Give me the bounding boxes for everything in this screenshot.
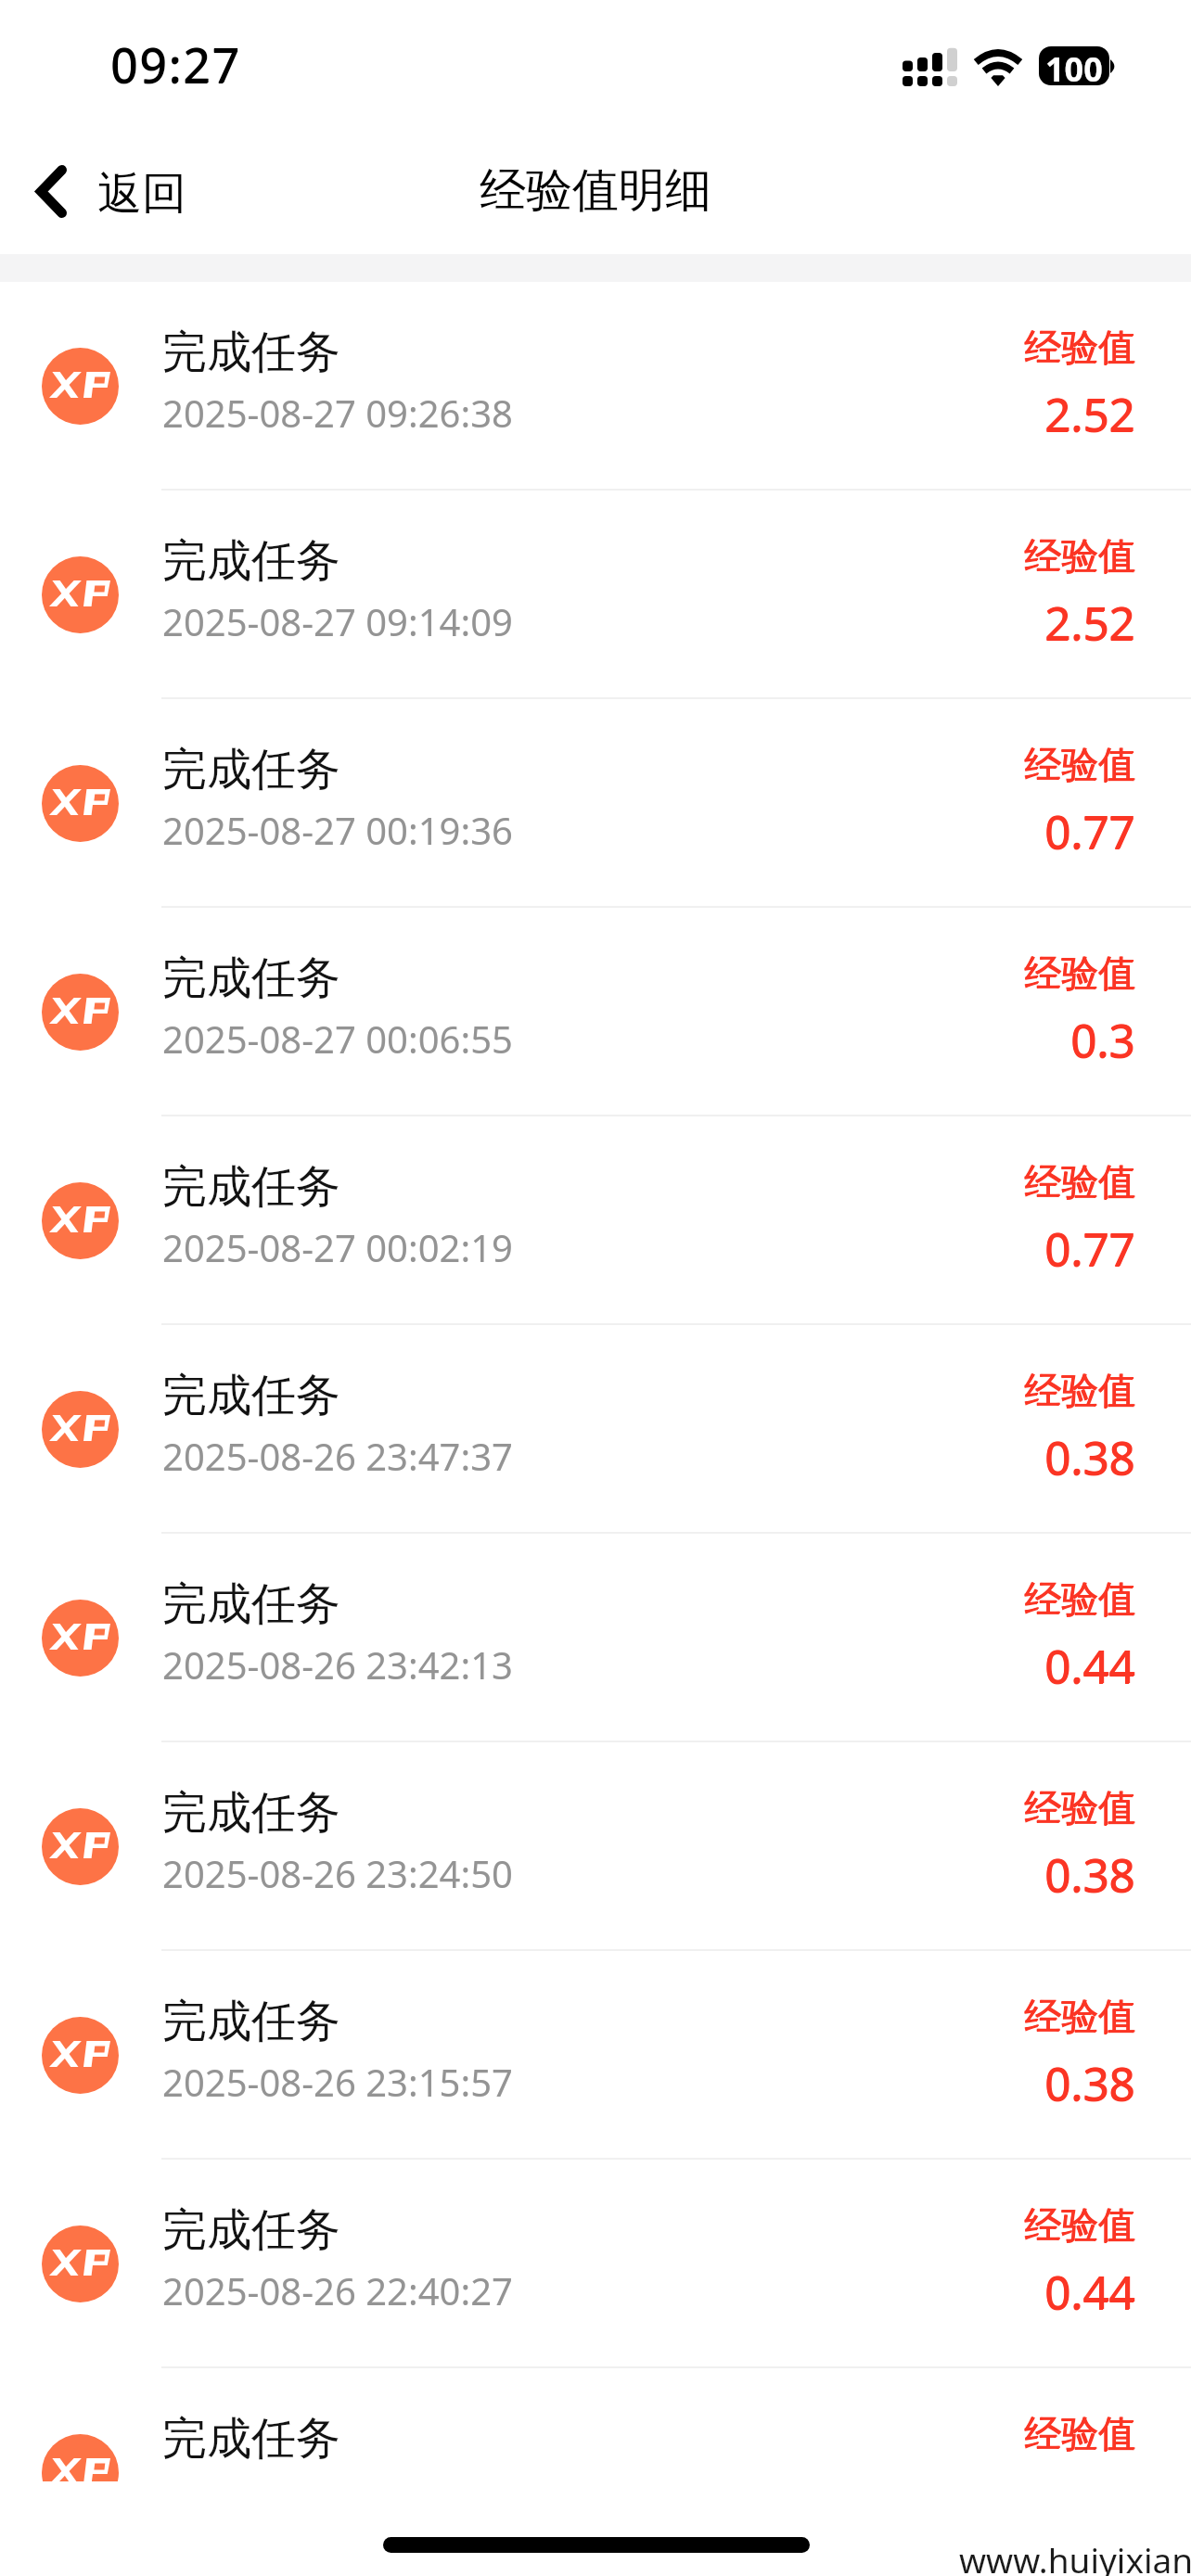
staticText: 完成任务 xyxy=(162,2202,340,2258)
staticText: 经验值 xyxy=(1024,1575,1135,1622)
staticText: 0.3 xyxy=(1070,1010,1135,1072)
staticText: 完成任务 xyxy=(162,533,340,589)
staticText: 2025-08-26 23:42:13 xyxy=(162,1639,513,1690)
staticText: 0.77 xyxy=(1044,1218,1135,1281)
staticText: 经验值 xyxy=(1024,533,1135,580)
staticText: 0.77 xyxy=(1044,800,1135,862)
staticText: 2.52 xyxy=(1044,384,1135,446)
button[interactable]: 完成任务 xyxy=(0,1951,1191,2160)
button[interactable]: 完成任务 xyxy=(0,2160,1191,2368)
staticText: 0.44 xyxy=(1045,1635,1136,1697)
staticText: 0.38 xyxy=(1045,2052,1136,2114)
staticText: 2025-08-27 09:26:38 xyxy=(162,388,513,438)
button[interactable]: 完成任务 xyxy=(0,1325,1191,1534)
staticText: 0.38 xyxy=(1044,1844,1135,1906)
staticText: 经验值 xyxy=(1025,1784,1136,1830)
staticText: 0.44 xyxy=(1044,1635,1135,1697)
staticText: 0.3 xyxy=(1071,1009,1136,1071)
staticText: 完成任务 xyxy=(162,1576,340,1632)
staticText: 2.52 xyxy=(1044,593,1135,655)
staticText: 0.38 xyxy=(1044,2052,1135,2114)
staticText: 经验值 xyxy=(1025,1993,1136,2039)
staticText: 经验值明细 xyxy=(480,161,711,220)
staticText: 2025-08-27 00:02:19 xyxy=(162,1222,513,1272)
button[interactable]: 完成任务 xyxy=(0,282,1191,491)
staticText: 0.38 xyxy=(1044,1426,1135,1488)
button[interactable]: 完成任务 xyxy=(0,908,1191,1116)
staticText: 经验值 xyxy=(1024,325,1135,371)
staticText: 0.44 xyxy=(1044,1636,1135,1698)
staticText: 2025-08-26 23:15:57 xyxy=(162,2057,513,2107)
staticText: 经验值 xyxy=(1024,1159,1135,1205)
staticText: 经验值 xyxy=(1025,324,1136,370)
staticText: 完成任务 xyxy=(162,742,340,797)
staticText: 经验值 xyxy=(1024,1158,1135,1205)
staticText: 0.77 xyxy=(1045,1218,1136,1280)
staticText: 返回 xyxy=(97,166,186,222)
staticText: 完成任务 xyxy=(162,950,340,1006)
staticText: 100 xyxy=(1045,46,1103,85)
staticText: 09:27 xyxy=(110,32,241,96)
staticText: 2025-08-27 09:14:09 xyxy=(162,596,513,646)
button[interactable]: 完成任务 xyxy=(0,1534,1191,1742)
staticText: 0.38 xyxy=(1044,2053,1135,2115)
staticText: 经验值 xyxy=(1024,1576,1135,1623)
staticText: 经验值 xyxy=(1024,742,1135,788)
button[interactable]: 完成任务 xyxy=(0,2368,1191,2481)
staticText: 完成任务 xyxy=(162,1785,340,1841)
staticText: 2.52 xyxy=(1044,592,1135,654)
staticText: 09:27 xyxy=(110,32,241,96)
staticText: 经验值 xyxy=(1025,1158,1136,1205)
staticText: 2025-08-26 22:40:27 xyxy=(162,2265,513,2315)
staticText: 经验值 xyxy=(1024,1994,1135,2040)
button[interactable]: 完成任务 xyxy=(0,699,1191,908)
staticText: 2025-08-26 23:47:37 xyxy=(162,1431,513,1481)
staticText: 经验值 xyxy=(1024,1785,1135,1831)
staticText: 0.77 xyxy=(1044,801,1135,863)
other: Battery 100 percent xyxy=(1039,46,1117,87)
staticText: 经验值 xyxy=(1024,950,1135,996)
staticText: 经验值 xyxy=(1024,2411,1135,2457)
button[interactable]: 完成任务 xyxy=(0,491,1191,699)
staticText: 经验值 xyxy=(1024,2202,1135,2249)
staticText: 经验值 xyxy=(1024,324,1135,370)
staticText: 经验值 xyxy=(1025,2201,1136,2248)
staticText: 经验值 xyxy=(1024,950,1135,997)
staticText: 经验值 xyxy=(1024,741,1135,787)
staticText: 完成任务 xyxy=(162,2411,340,2467)
staticText: 经验值 xyxy=(1024,1368,1135,1414)
staticText: 完成任务 xyxy=(162,1994,340,2049)
staticText: 经验值 xyxy=(1024,2201,1135,2248)
staticText: 经验值 xyxy=(1024,1993,1135,2039)
staticText: 经验值 xyxy=(1024,532,1135,579)
button[interactable]: 完成任务 xyxy=(0,1116,1191,1325)
staticText: 0.44 xyxy=(1045,2261,1136,2323)
staticText: 2.52 xyxy=(1045,383,1136,445)
staticText: 经验值 xyxy=(1025,1367,1136,1413)
staticText: 经验值 xyxy=(1024,2410,1135,2456)
staticText: 经验值 xyxy=(1025,1575,1136,1622)
staticText: 2025-08-26 23:24:50 xyxy=(162,1848,513,1898)
staticText: 完成任务 xyxy=(162,1159,340,1215)
staticText: 经验值 xyxy=(1025,741,1136,787)
staticText: 0.38 xyxy=(1045,1843,1136,1906)
staticText: 09:27 xyxy=(111,32,242,96)
staticText: 0.44 xyxy=(1044,2261,1135,2323)
staticText: 2025-08-27 00:19:36 xyxy=(162,805,513,855)
staticText: 完成任务 xyxy=(162,325,340,380)
staticText: 0.77 xyxy=(1044,1218,1135,1280)
staticText: 经验值 xyxy=(1024,1784,1135,1830)
staticText: 经验值 xyxy=(1024,1367,1135,1413)
button[interactable]: 返回 xyxy=(0,111,212,254)
staticText: 0.38 xyxy=(1044,1427,1135,1489)
staticText: 2.52 xyxy=(1044,383,1135,445)
staticText: www.huiyixian.com xyxy=(959,2536,1191,2576)
staticText: 2025-08-27 00:06:55 xyxy=(162,1014,513,1064)
button[interactable]: 完成任务 xyxy=(0,1742,1191,1951)
staticText: 0.38 xyxy=(1045,1426,1136,1488)
staticText: 经验值 xyxy=(1025,950,1136,996)
staticText: 0.77 xyxy=(1045,800,1136,862)
other: Cellular signal xyxy=(903,47,956,86)
